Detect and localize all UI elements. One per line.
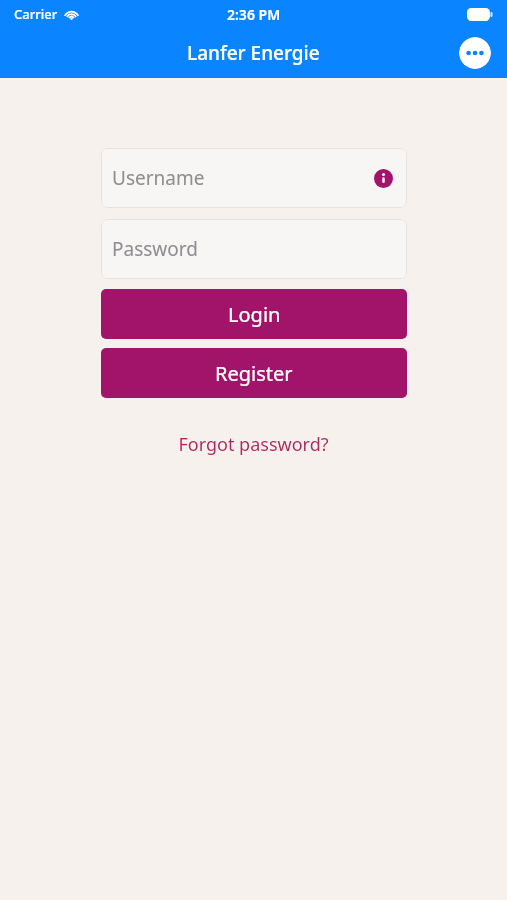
button[interactable]: Register [101, 348, 407, 398]
staticText: Password [112, 236, 198, 262]
button[interactable]: More options [459, 37, 491, 69]
staticText: Register [215, 360, 293, 387]
staticText: Username [112, 165, 205, 191]
staticText: Lanfer Energie [187, 40, 320, 66]
button[interactable]: Forgot password? [170, 428, 337, 461]
button[interactable]: Password [101, 219, 407, 279]
staticText: Forgot password? [178, 432, 329, 457]
button[interactable]: Login [101, 289, 407, 339]
staticText: 2:36 PM [227, 5, 281, 24]
button[interactable]: Username info [373, 168, 393, 188]
button[interactable]: Username [101, 148, 407, 208]
staticText: Login [228, 301, 281, 328]
staticText: Carrier [14, 5, 58, 23]
